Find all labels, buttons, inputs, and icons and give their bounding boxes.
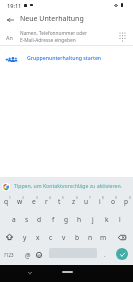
button[interactable]: Emoji [32,246,45,264]
button[interactable]: v [57,228,70,246]
staticText: g [64,215,69,224]
button[interactable]: f [47,210,60,228]
button[interactable]: l [113,210,126,228]
staticText: k [105,215,109,224]
staticText: E-Mail-Adresse eingeben [20,37,76,44]
button[interactable]: h [73,210,86,228]
staticText: j [92,215,94,224]
staticText: 0 [129,196,131,200]
button[interactable]: w [13,192,26,210]
staticText: y [23,233,27,242]
button[interactable]: . [99,246,111,264]
button[interactable]: e [27,192,40,210]
staticText: u [84,197,89,206]
staticText: r [45,197,48,206]
staticText: m [100,233,107,242]
staticText: f [52,215,55,224]
button[interactable]: At sign [19,246,37,264]
button[interactable]: Shift [0,228,18,246]
staticText: Tippen, um Kontaktvorschläge zu aktivier… [14,182,123,189]
button[interactable]: d [33,210,46,228]
staticText: ?123 [4,252,14,258]
button[interactable]: m [97,228,110,246]
staticText: Gruppenunterhaltung starten [27,54,102,61]
button[interactable]: Gruppenunterhaltung starten [0,48,133,63]
staticText: q [4,197,9,206]
button[interactable]: x [31,228,44,246]
button[interactable]: n [84,228,97,246]
staticText: b [75,233,80,242]
staticText: 9 [115,196,117,200]
staticText: @ [25,251,31,259]
button[interactable]: Backspace [111,228,133,246]
button[interactable]: Dial pad [114,28,131,45]
button[interactable]: o [106,192,119,210]
staticText: p [124,197,129,206]
button[interactable]: a [7,210,20,228]
staticText: w [17,197,23,206]
staticText: 3 [36,196,38,200]
staticText: n [88,233,93,242]
staticText: d [37,215,42,224]
button[interactable]: t [53,192,66,210]
staticText: Namen, Telefonnummer oder [20,30,87,37]
staticText: v [62,233,66,242]
staticText: 7 [89,196,91,200]
staticText: c [49,233,53,242]
staticText: An [6,34,13,41]
staticText: t [58,197,61,206]
staticText: s [25,215,29,224]
button[interactable]: u [80,192,93,210]
button[interactable]: p [120,192,133,210]
staticText: o [111,197,115,206]
staticText: x [36,233,40,242]
staticText: 2 [22,196,24,200]
button[interactable]: Back [2,12,18,28]
staticText: z [72,197,76,206]
staticText: 1 [9,196,11,200]
staticText: a [12,215,16,224]
staticText: l [119,215,121,224]
staticText: i [99,197,101,206]
button[interactable]: j [86,210,99,228]
button[interactable]: k [100,210,113,228]
button[interactable]: q [0,192,13,210]
staticText: h [77,215,82,224]
button[interactable]: g [60,210,73,228]
staticText: 4 [49,196,51,200]
staticText: 6 [76,196,78,200]
staticText: Neue Unterhaltung [20,14,84,24]
button[interactable]: Hide keyboard [25,268,35,278]
button[interactable]: Done [114,248,130,260]
button[interactable]: ?123 [0,246,18,264]
staticText: 19:11 [7,2,22,10]
button[interactable]: s [20,210,33,228]
staticText: 5 [62,196,64,200]
staticText: . [104,251,106,259]
button[interactable]: i [93,192,106,210]
staticText: 8 [102,196,104,200]
button[interactable]: z [67,192,80,210]
button[interactable]: r [40,192,53,210]
button[interactable]: c [44,228,57,246]
staticText: e [32,197,36,206]
button[interactable]: b [71,228,84,246]
button[interactable]: y [18,228,31,246]
